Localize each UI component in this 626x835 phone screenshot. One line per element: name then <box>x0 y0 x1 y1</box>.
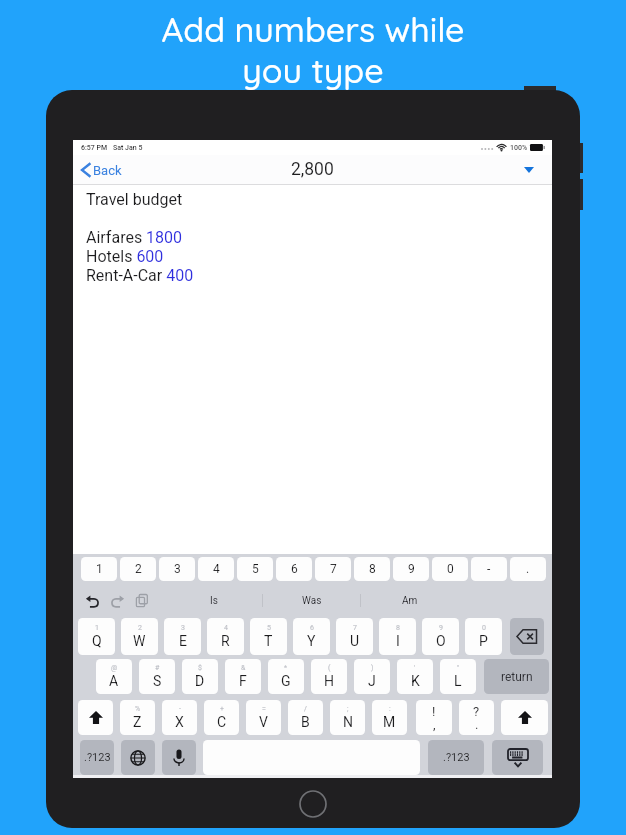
staticText: 7 <box>353 624 357 632</box>
staticText: 3 <box>181 624 185 632</box>
staticText: 8 <box>369 562 376 576</box>
staticText: Is <box>210 595 218 607</box>
button[interactable]: .?123 <box>80 740 114 775</box>
staticText: Travel budget Airfares 1800 Hotels 600 R… <box>86 190 194 285</box>
staticText: 0 <box>447 562 454 576</box>
button[interactable]: Dictate <box>162 740 196 775</box>
button[interactable]: return <box>484 659 549 694</box>
staticText: ? <box>473 704 480 719</box>
button[interactable]: Change keyboard <box>121 740 155 775</box>
button[interactable]: - <box>162 700 197 735</box>
button[interactable]: 1 <box>78 618 115 655</box>
button[interactable]: 2 <box>120 557 156 581</box>
button[interactable]: + <box>204 700 239 735</box>
button[interactable]: ) <box>354 659 390 694</box>
button[interactable]: = <box>246 700 281 735</box>
button[interactable]: Hide keyboard <box>492 740 543 775</box>
button[interactable]: ? <box>459 700 494 735</box>
staticText: / <box>304 705 307 713</box>
button[interactable]: 7 <box>336 618 373 655</box>
staticText: E <box>179 633 187 649</box>
staticText: .?123 <box>84 751 111 764</box>
button[interactable]: 6 <box>276 557 312 581</box>
button[interactable]: & <box>225 659 261 694</box>
button[interactable]: ! <box>416 700 452 735</box>
staticText: W <box>133 633 146 649</box>
staticText: * <box>284 664 288 672</box>
staticText: X <box>175 714 184 730</box>
staticText: $ <box>198 664 202 672</box>
button[interactable]: 9 <box>393 557 429 581</box>
staticText: U <box>350 633 360 649</box>
button[interactable]: Was <box>263 589 361 612</box>
button[interactable]: 3 <box>159 557 195 581</box>
staticText: 0 <box>482 624 486 632</box>
button[interactable]: 9 <box>422 618 459 655</box>
staticText: & <box>241 664 246 672</box>
staticText: N <box>343 714 353 730</box>
staticText: 9 <box>439 624 443 632</box>
staticText: Back <box>93 163 122 178</box>
button[interactable]: Backspace <box>510 618 544 655</box>
staticText: % <box>135 705 141 713</box>
button[interactable]: . <box>510 557 546 581</box>
staticText: 4 <box>213 562 220 576</box>
button[interactable]: Copy <box>132 591 152 611</box>
staticText: 5 <box>267 624 271 632</box>
button[interactable]: ' <box>397 659 433 694</box>
button[interactable]: 7 <box>315 557 351 581</box>
button[interactable]: More options <box>519 160 539 180</box>
button[interactable]: - <box>471 557 507 581</box>
button[interactable]: .?123 <box>428 740 484 775</box>
button[interactable]: Redo <box>107 591 127 611</box>
button[interactable]: # <box>139 659 175 694</box>
staticText: Q <box>92 633 102 649</box>
staticText: 1 <box>95 624 99 632</box>
button[interactable]: 0 <box>432 557 468 581</box>
staticText: O <box>436 633 446 649</box>
staticText: return <box>501 670 533 684</box>
button[interactable]: Shift <box>501 700 548 735</box>
button[interactable]: @ <box>96 659 132 694</box>
button[interactable]: $ <box>182 659 218 694</box>
button[interactable]: 5 <box>237 557 273 581</box>
button[interactable]: ( <box>311 659 347 694</box>
staticText: M <box>383 714 396 730</box>
staticText: Was <box>302 595 322 607</box>
button[interactable]: % <box>120 700 155 735</box>
button[interactable]: Am <box>361 589 459 612</box>
button[interactable]: 2 <box>121 618 158 655</box>
staticText: " <box>457 664 460 672</box>
button[interactable]: 0 <box>465 618 502 655</box>
button[interactable]: 5 <box>250 618 287 655</box>
staticText: ; <box>347 705 349 713</box>
button[interactable]: : <box>372 700 407 735</box>
button[interactable]: 3 <box>164 618 201 655</box>
button[interactable]: Back <box>81 155 122 185</box>
staticText: L <box>454 673 462 689</box>
staticText: R <box>221 633 230 649</box>
button[interactable]: / <box>288 700 323 735</box>
button[interactable]: 4 <box>207 618 244 655</box>
button[interactable]: 4 <box>198 557 234 581</box>
staticText: 6 <box>291 562 298 576</box>
button[interactable]: 8 <box>379 618 416 655</box>
button[interactable]: 1 <box>81 557 117 581</box>
staticText: , <box>433 717 436 732</box>
button[interactable]: Shift <box>78 700 113 735</box>
button[interactable]: 8 <box>354 557 390 581</box>
button[interactable]: 6 <box>293 618 330 655</box>
staticText: 2,800 <box>291 159 334 180</box>
staticText: : <box>389 705 391 713</box>
button[interactable]: Is <box>165 589 263 612</box>
staticText: Z <box>133 714 142 730</box>
button[interactable]: Undo <box>82 591 102 611</box>
button[interactable]: ; <box>330 700 365 735</box>
staticText: 100% <box>510 144 528 152</box>
staticText: V <box>259 714 268 730</box>
button[interactable]: * <box>268 659 304 694</box>
staticText: ( <box>328 664 331 672</box>
staticText: @ <box>111 664 118 672</box>
button[interactable]: " <box>440 659 476 694</box>
